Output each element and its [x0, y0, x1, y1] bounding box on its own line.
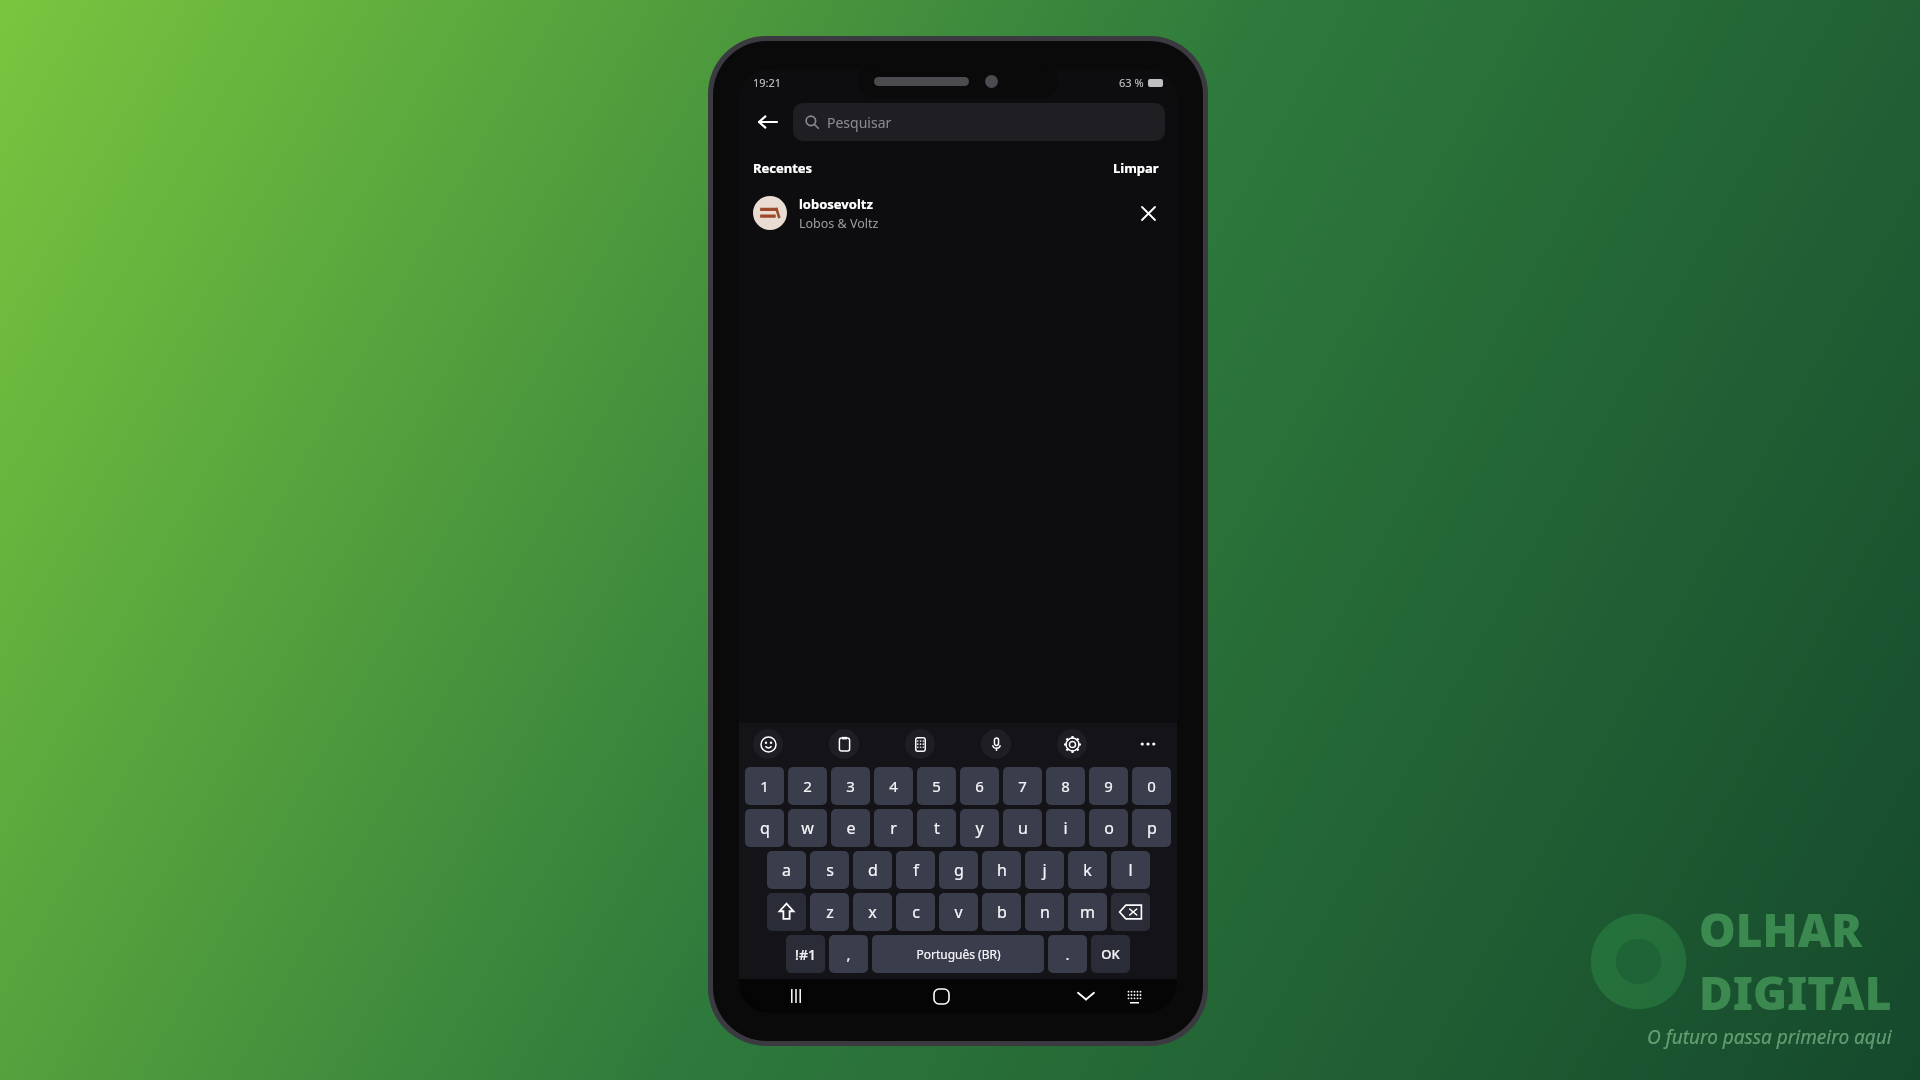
staticText: m	[1080, 901, 1095, 923]
button[interactable]: Fechar teclado	[1069, 979, 1103, 1013]
staticText: r	[890, 817, 897, 839]
staticText: 3	[846, 776, 855, 796]
button[interactable]: Emoji	[753, 729, 783, 759]
button[interactable]: c	[896, 893, 935, 931]
staticText: l	[1128, 859, 1133, 881]
button[interactable]: e	[831, 809, 870, 847]
staticText: x	[868, 901, 877, 923]
button[interactable]: 8	[1046, 767, 1085, 805]
button[interactable]: 3	[831, 767, 870, 805]
staticText: t	[934, 817, 940, 839]
button[interactable]: 5	[917, 767, 956, 805]
staticText: Pesquisar	[827, 113, 892, 132]
button[interactable]: k	[1068, 851, 1107, 889]
button[interactable]: Maiúsculas	[767, 893, 806, 931]
button[interactable]: 9	[1089, 767, 1128, 805]
staticText: c	[912, 901, 920, 923]
staticText: s	[826, 859, 834, 881]
button[interactable]: d	[853, 851, 892, 889]
button[interactable]: f	[896, 851, 935, 889]
staticText: g	[954, 859, 964, 881]
staticText: 19:21	[753, 75, 782, 90]
button[interactable]: Recentes	[779, 979, 813, 1013]
button[interactable]: s	[810, 851, 849, 889]
button[interactable]: b	[982, 893, 1021, 931]
staticText: e	[846, 817, 856, 839]
button[interactable]: w	[788, 809, 827, 847]
staticText: f	[913, 859, 919, 881]
button[interactable]: a	[767, 851, 806, 889]
button[interactable]: Apagar	[1111, 893, 1150, 931]
staticText: 6	[975, 776, 984, 796]
button[interactable]: n	[1025, 893, 1064, 931]
button[interactable]: Teclado	[1117, 979, 1151, 1013]
button[interactable]: 4	[874, 767, 913, 805]
button[interactable]: Voltar	[747, 102, 787, 142]
staticText: 5	[932, 776, 941, 796]
button[interactable]: x	[853, 893, 892, 931]
button[interactable]: Configurações	[1057, 729, 1087, 759]
button[interactable]: OK	[1091, 935, 1130, 973]
staticText: d	[868, 859, 878, 881]
staticText: 1	[760, 776, 769, 796]
button[interactable]: m	[1068, 893, 1107, 931]
button[interactable]: Limpar	[1109, 155, 1163, 181]
button[interactable]: 6	[960, 767, 999, 805]
button[interactable]: Pesquisar	[793, 103, 1165, 141]
button[interactable]: .	[1048, 935, 1087, 973]
button[interactable]: Início	[924, 979, 958, 1013]
button[interactable]: g	[939, 851, 978, 889]
staticText: OK	[1101, 945, 1120, 963]
staticText: Lobos & Voltz	[799, 215, 879, 232]
staticText: Português (BR)	[916, 946, 1001, 962]
button[interactable]: y	[960, 809, 999, 847]
staticText: y	[975, 817, 984, 839]
staticText: u	[1018, 817, 1028, 839]
button[interactable]: 7	[1003, 767, 1042, 805]
button[interactable]: Português (BR)	[872, 935, 1044, 973]
button[interactable]: Área de transferência	[829, 729, 859, 759]
button[interactable]: z	[810, 893, 849, 931]
button[interactable]: h	[982, 851, 1021, 889]
staticText: i	[1063, 817, 1068, 839]
button[interactable]: o	[1089, 809, 1128, 847]
staticText: 4	[889, 776, 898, 796]
staticText: OLHAR	[1699, 898, 1863, 961]
button[interactable]: lobosevoltz	[739, 187, 1177, 239]
staticText: z	[826, 901, 834, 923]
button[interactable]: Entrada de voz	[981, 729, 1011, 759]
staticText: v	[954, 901, 963, 923]
button[interactable]: 0	[1132, 767, 1171, 805]
button[interactable]: Mais opções	[1133, 729, 1163, 759]
button[interactable]: Remover	[1133, 198, 1163, 228]
button[interactable]: ,	[829, 935, 868, 973]
staticText: 7	[1018, 776, 1027, 796]
button[interactable]: v	[939, 893, 978, 931]
button[interactable]: r	[874, 809, 913, 847]
button[interactable]: j	[1025, 851, 1064, 889]
staticText: 8	[1061, 776, 1070, 796]
staticText: w	[801, 817, 814, 839]
button[interactable]: i	[1046, 809, 1085, 847]
staticText: n	[1040, 901, 1050, 923]
staticText: p	[1147, 817, 1157, 839]
staticText: k	[1083, 859, 1092, 881]
button[interactable]: p	[1132, 809, 1171, 847]
button[interactable]: l	[1111, 851, 1150, 889]
button[interactable]: q	[745, 809, 784, 847]
staticText: DIGITAL	[1699, 961, 1892, 1024]
button[interactable]: Modo de escrita	[905, 729, 935, 759]
button[interactable]: u	[1003, 809, 1042, 847]
staticText: q	[760, 817, 770, 839]
staticText: 9	[1104, 776, 1113, 796]
button[interactable]: !#1	[786, 935, 825, 973]
staticText: o	[1104, 817, 1114, 839]
button[interactable]: t	[917, 809, 956, 847]
staticText: b	[997, 901, 1007, 923]
button[interactable]: 1	[745, 767, 784, 805]
staticText: Recentes	[753, 159, 813, 177]
staticText: !#1	[795, 945, 816, 964]
staticText: .	[1065, 944, 1070, 964]
staticText: 63 %	[1119, 75, 1144, 90]
button[interactable]: 2	[788, 767, 827, 805]
